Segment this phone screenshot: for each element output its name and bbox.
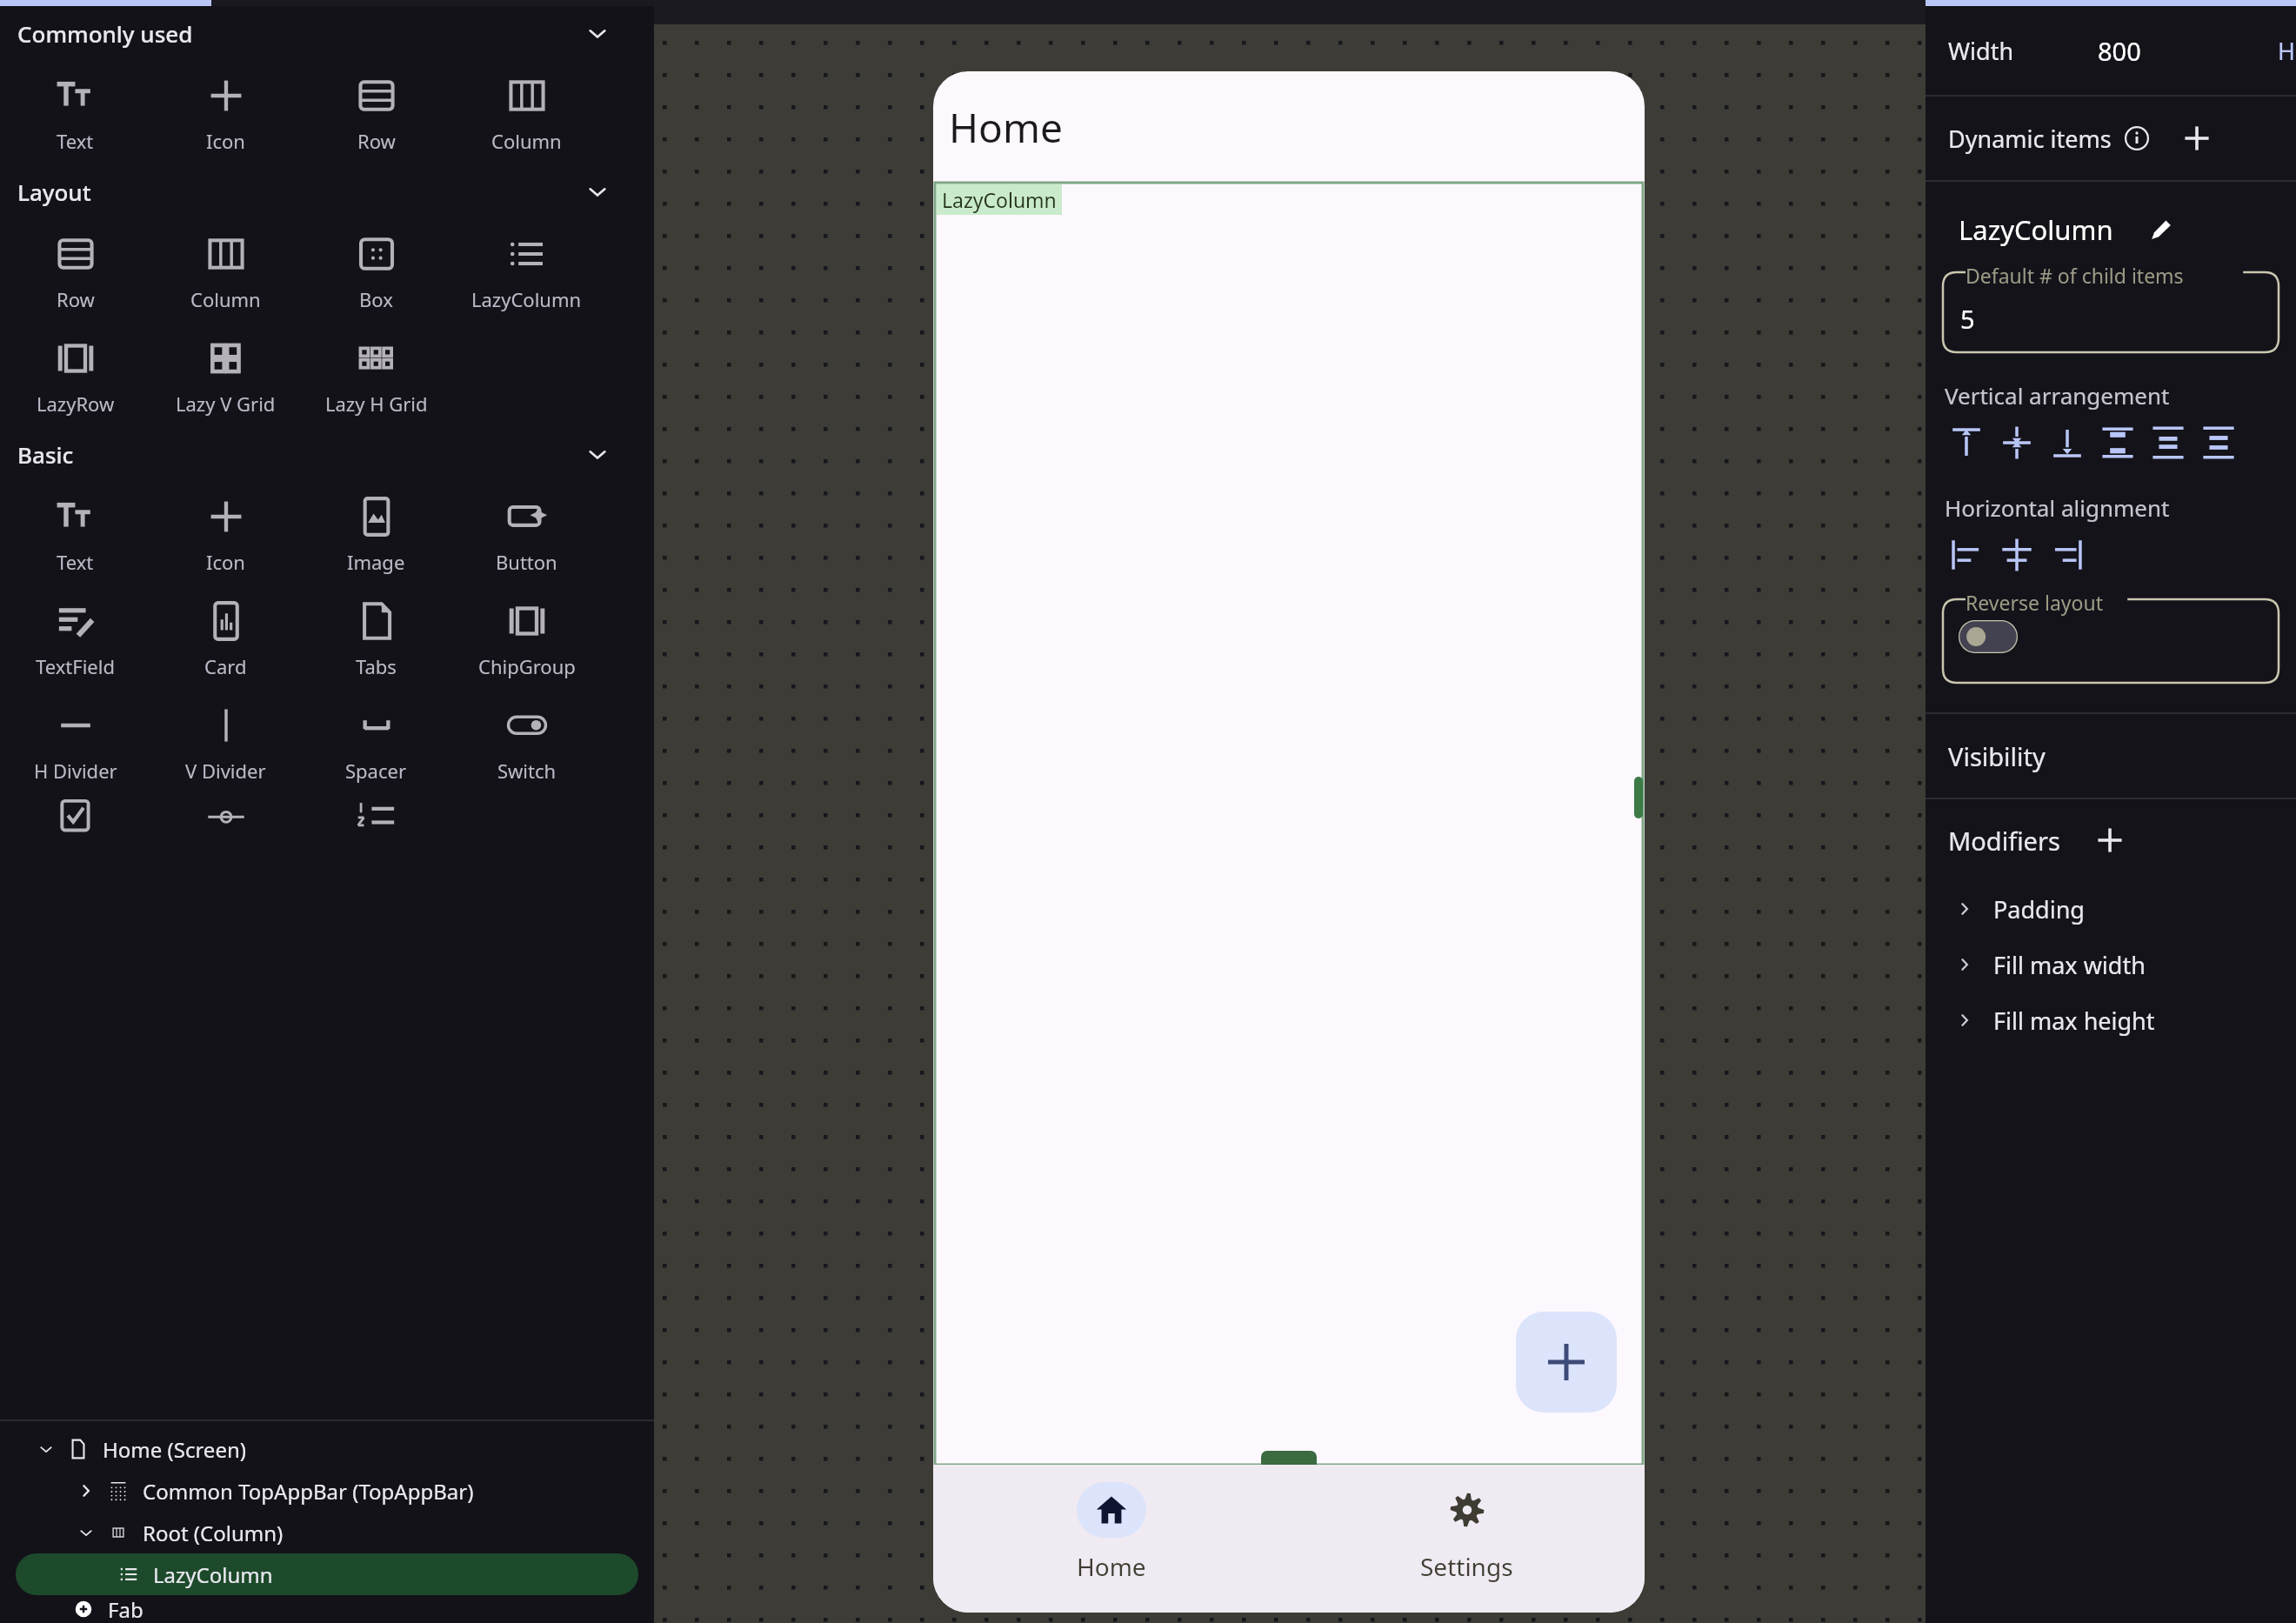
staticText: Reverse layout [1966, 589, 2103, 616]
button[interactable]: Width [1926, 6, 2296, 95]
button[interactable]: Spacer [301, 690, 451, 794]
staticText: Vertical arrangement [1945, 380, 2170, 411]
button[interactable]: Commonly used [0, 6, 654, 60]
staticText: Switch [497, 758, 557, 784]
staticText: Card [204, 653, 247, 679]
button[interactable]: Column [451, 60, 602, 164]
button[interactable]: Reverse layout [1943, 599, 2279, 683]
button[interactable]: Box [301, 218, 451, 323]
staticText: Home [1077, 1550, 1146, 1583]
button[interactable]: Default # of child items [1943, 272, 2279, 352]
staticText: Box [359, 286, 393, 312]
staticText: Text [57, 128, 94, 154]
button[interactable]: LazyColumn [16, 1553, 638, 1595]
staticText: Fab [108, 1595, 143, 1623]
staticText: LazyColumn [471, 286, 582, 312]
staticText: LazyRow [37, 391, 115, 417]
button[interactable]: LazyColumn [935, 183, 1643, 1465]
staticText: Horizontal alignment [1945, 492, 2170, 523]
button[interactable]: LazyColumn [451, 218, 602, 323]
button[interactable]: Image [301, 481, 451, 585]
button[interactable] [150, 794, 301, 820]
button[interactable]: Text [0, 481, 150, 585]
button[interactable]: V Divider [150, 690, 301, 794]
staticText: Common TopAppBar (TopAppBar) [143, 1477, 474, 1506]
staticText: Spacer [345, 758, 407, 784]
staticText: Default # of child items [1966, 262, 2184, 289]
button[interactable]: Rename [2143, 211, 2179, 248]
other: Info [2124, 125, 2150, 151]
button[interactable]: Lazy V Grid [150, 323, 301, 427]
staticText: H Divider [34, 758, 117, 784]
button[interactable]: Settings [1289, 1465, 1645, 1613]
button[interactable]: Common TopAppBar (TopAppBar) [16, 1470, 638, 1512]
button[interactable] [0, 794, 150, 820]
staticText: Padding [1993, 893, 2085, 925]
button[interactable]: Column [150, 218, 301, 323]
staticText: Row [57, 286, 95, 312]
button[interactable]: Switch [451, 690, 602, 794]
button[interactable]: Row [0, 218, 150, 323]
staticText: V Divider [185, 758, 266, 784]
button[interactable]: Icon [150, 481, 301, 585]
button[interactable]: Space between [2092, 417, 2143, 468]
button[interactable]: Add dynamic item [2179, 121, 2214, 156]
button[interactable]: Home [949, 100, 1063, 155]
button[interactable]: Button [451, 481, 602, 585]
button[interactable]: Root (Column) [16, 1512, 638, 1553]
button[interactable] [301, 794, 451, 820]
staticText: Image [347, 549, 405, 575]
button[interactable]: Card [150, 585, 301, 690]
button[interactable]: Space around [2143, 417, 2193, 468]
button[interactable]: Reverse layout [1959, 620, 2018, 653]
button[interactable]: Visibility [1926, 714, 2296, 798]
button[interactable]: Fill max height [1926, 992, 2296, 1048]
staticText: Icon [206, 128, 245, 154]
staticText: Text [57, 549, 94, 575]
staticText: Column [190, 286, 261, 312]
button[interactable]: H Divider [0, 690, 150, 794]
button[interactable]: Space evenly [2193, 417, 2244, 468]
staticText: Basic [17, 439, 74, 470]
staticText: LazyColumn [942, 186, 1057, 213]
staticText: Width [1948, 35, 2014, 67]
staticText: Button [496, 549, 557, 575]
button[interactable]: Text [0, 60, 150, 164]
staticText: Settings [1420, 1550, 1513, 1583]
button[interactable]: Padding [1926, 881, 2296, 937]
button[interactable]: Fill max width [1926, 937, 2296, 992]
button[interactable]: TextField [0, 585, 150, 690]
staticText: Home [949, 100, 1063, 155]
staticText: LazyColumn [1959, 211, 2113, 248]
staticText: Fill max width [1993, 949, 2146, 981]
button[interactable]: End [2042, 530, 2092, 580]
staticText: Lazy H Grid [325, 391, 428, 417]
staticText: Layout [17, 177, 91, 207]
button[interactable]: Top [1941, 417, 1992, 468]
staticText: Lazy V Grid [176, 391, 276, 417]
staticText: Root (Column) [143, 1519, 284, 1547]
staticText: Commonly used [17, 18, 193, 49]
button[interactable]: LazyRow [0, 323, 150, 427]
button[interactable]: Lazy H Grid [301, 323, 451, 427]
button[interactable]: Row [301, 60, 451, 164]
button[interactable]: Basic [0, 427, 654, 481]
staticText: Home (Screen) [103, 1435, 246, 1464]
button[interactable]: Start [1941, 530, 1992, 580]
button[interactable]: Fab [16, 1595, 638, 1623]
button[interactable]: Center [1992, 530, 2042, 580]
staticText: Row [357, 128, 396, 154]
button[interactable]: Icon [150, 60, 301, 164]
button[interactable]: Bottom [2042, 417, 2092, 468]
button[interactable]: Home (Screen) [16, 1428, 638, 1470]
button[interactable]: Layout [0, 164, 654, 218]
staticText: Tabs [356, 653, 397, 679]
button[interactable]: Add modifier [2092, 822, 2128, 858]
button[interactable]: Tabs [301, 585, 451, 690]
staticText: 5 [1960, 302, 1975, 336]
staticText: Visibility [1948, 739, 2046, 773]
button[interactable]: Add [1516, 1312, 1617, 1413]
button[interactable]: Center [1992, 417, 2042, 468]
button[interactable]: Home [933, 1465, 1289, 1613]
button[interactable]: ChipGroup [451, 585, 602, 690]
